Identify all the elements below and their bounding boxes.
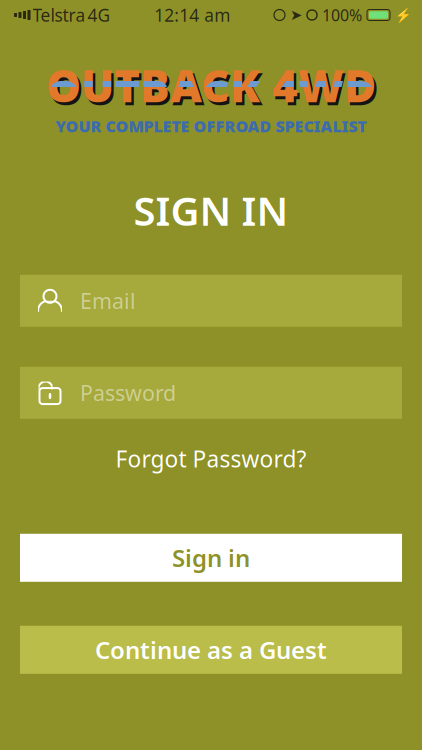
staticText: Telstra [32, 3, 85, 26]
staticText: ⚡ [395, 7, 412, 23]
staticText: Continue as a Guest [95, 634, 327, 666]
staticText: Email [80, 287, 136, 315]
staticText: ➤ [290, 7, 302, 23]
button[interactable]: Email [20, 275, 402, 327]
staticText: Sign in [172, 542, 250, 574]
staticText: Forgot Password? [115, 444, 306, 474]
staticText: 4WD [272, 56, 376, 114]
staticText: OUTBACK [46, 56, 260, 114]
staticText: YOUR COMPLETE OFFROAD SPECIALIST [55, 115, 366, 137]
staticText: 4WD [272, 66, 376, 125]
staticText: OUTBACK [46, 66, 260, 125]
staticText: 4G [87, 3, 110, 26]
staticText: 4WD [274, 59, 378, 117]
button[interactable]: Continue as a Guest [20, 626, 402, 674]
staticText: 12:14 am [154, 3, 230, 26]
staticText: SIGN IN [133, 184, 288, 237]
button[interactable]: Sign in [20, 534, 402, 582]
staticText: Password [80, 379, 176, 407]
button[interactable]: Password [20, 367, 402, 419]
staticText: OUTBACK [48, 59, 262, 117]
staticText: 100% [322, 4, 362, 26]
button[interactable]: Forgot Password? [20, 439, 402, 479]
